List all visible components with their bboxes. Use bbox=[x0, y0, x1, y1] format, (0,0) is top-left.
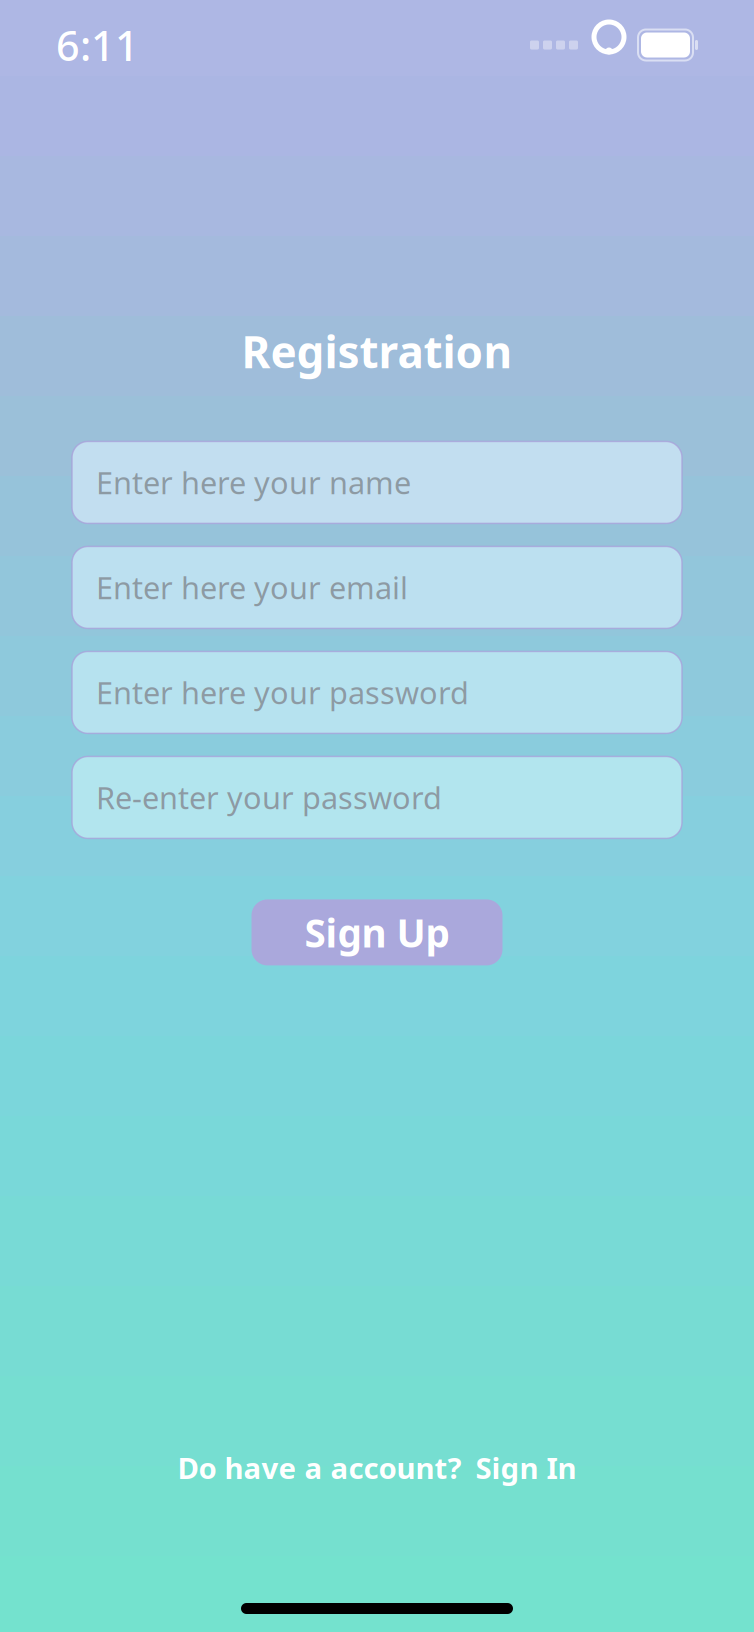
button[interactable]: Enter here your email bbox=[72, 546, 682, 628]
staticText: Enter here your email bbox=[96, 567, 408, 608]
staticText: Sign Up bbox=[304, 907, 449, 958]
button[interactable]: Do have a account? bbox=[165, 1440, 588, 1495]
button[interactable]: Sign Up bbox=[251, 899, 502, 965]
button[interactable]: Re-enter your password bbox=[72, 756, 682, 838]
staticText: Re-enter your password bbox=[96, 777, 442, 818]
button[interactable]: Enter here your name bbox=[72, 441, 682, 523]
staticText: Registration bbox=[241, 322, 512, 380]
staticText: Enter here your password bbox=[96, 672, 469, 713]
button[interactable]: Enter here your password bbox=[72, 651, 682, 733]
staticText: Sign In bbox=[475, 1448, 576, 1487]
staticText: Do have a account? bbox=[177, 1448, 461, 1487]
staticText: 6:11 bbox=[56, 18, 139, 72]
staticText: Enter here your name bbox=[96, 462, 411, 503]
